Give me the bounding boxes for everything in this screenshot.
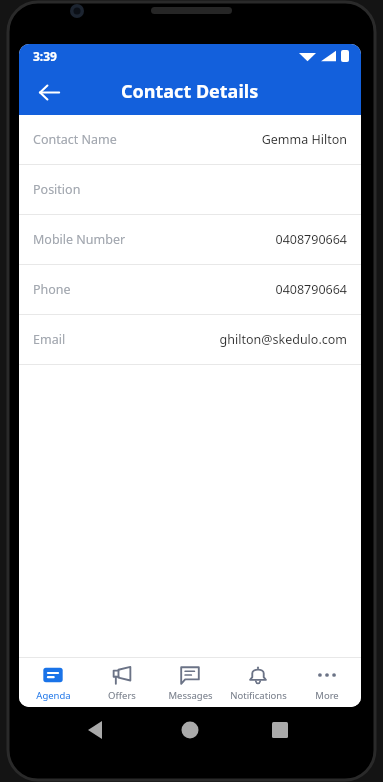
button[interactable]: Phone — [19, 265, 361, 315]
staticText: Position — [33, 181, 81, 198]
button[interactable]: Notifications — [224, 658, 292, 707]
button[interactable]: Offers — [88, 658, 156, 707]
button[interactable]: Mobile Number — [19, 215, 361, 265]
staticText: 3:39 — [33, 48, 57, 64]
button[interactable]: Messages — [156, 658, 224, 707]
button[interactable]: Email — [19, 315, 361, 365]
staticText: More — [315, 689, 339, 702]
button[interactable]: Contact Name — [19, 115, 361, 165]
staticText: Contact Name — [33, 131, 117, 148]
staticText: Email — [33, 331, 66, 348]
staticText: Gemma Hilton — [261, 131, 347, 148]
button[interactable]: More — [293, 658, 361, 707]
staticText: Phone — [33, 281, 71, 298]
staticText: Mobile Number — [33, 231, 126, 248]
staticText: 0408790664 — [275, 231, 347, 248]
staticText: Offers — [108, 689, 136, 702]
staticText: Notifications — [230, 689, 287, 702]
button[interactable]: Agenda — [19, 658, 87, 707]
button[interactable]: Position — [19, 165, 361, 215]
staticText: ghilton@skedulo.com — [219, 331, 347, 348]
staticText: Messages — [168, 689, 213, 702]
staticText: Agenda — [36, 689, 71, 702]
staticText: 0408790664 — [275, 281, 347, 298]
button[interactable]: Back — [29, 72, 69, 112]
staticText: Contact Details — [121, 79, 259, 104]
